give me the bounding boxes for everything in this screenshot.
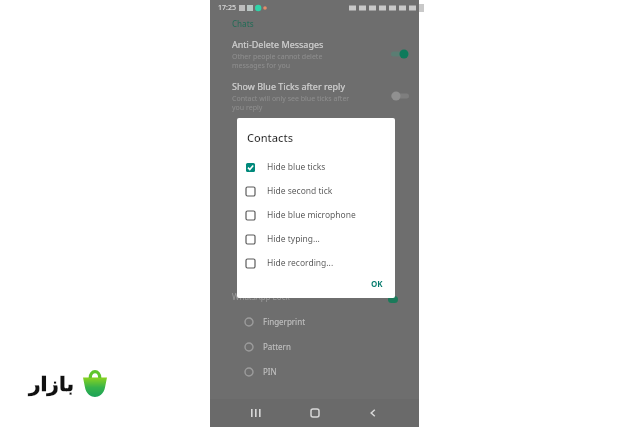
button[interactable]: Hide recording... [237,251,395,275]
button[interactable]: PIN [210,366,419,377]
staticText: Show Blue Ticks after reply [232,80,346,92]
staticText: Anti-Delete Messages [232,38,324,50]
button[interactable]: Hide blue microphone [237,203,395,227]
staticText: بازار [29,372,74,395]
staticText: Fingerprint [263,316,306,327]
button[interactable]: Recents [243,400,269,426]
staticText: Chats [232,18,254,29]
staticText: Pattern [263,341,291,352]
button[interactable]: Bazaar [8,357,130,408]
staticText: Other people cannot delete messages for … [232,52,323,70]
staticText: Hide recording... [267,257,334,269]
button[interactable]: Hide second tick [237,179,395,203]
button[interactable]: Hide typing... [237,227,395,251]
staticText: OK [371,278,383,289]
button[interactable]: Pattern [210,341,419,352]
button[interactable]: Anti-Delete Messages [210,38,419,70]
staticText: Hide second tick [267,185,333,197]
staticText: Hide blue ticks [267,161,326,173]
staticText: Contacts [247,130,294,145]
button[interactable]: Back [360,400,386,426]
button[interactable]: Home [302,400,328,426]
button[interactable]: OK [371,278,395,298]
staticText: WhatsApp Lock [232,291,290,302]
button[interactable]: Show Blue Ticks after reply [210,80,419,112]
button[interactable]: Fingerprint [210,316,419,327]
button[interactable]: Hide blue ticks [237,155,395,179]
staticText: Hide blue microphone [267,209,356,221]
staticText: Hide typing... [267,233,320,245]
staticText: Contact will only see blue ticks after y… [232,94,350,112]
staticText: PIN [263,366,277,377]
staticText: 17:25 [218,3,236,13]
